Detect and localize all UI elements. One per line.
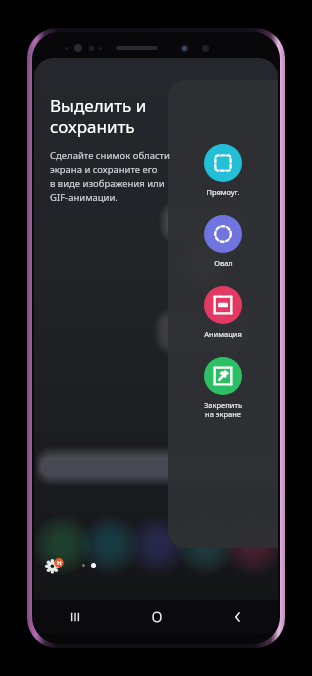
button[interactable]: Home [116, 600, 197, 634]
staticText: Овал [214, 258, 233, 268]
button[interactable]: Recents [34, 600, 116, 634]
button[interactable]: Закрепить на экране [200, 355, 246, 422]
staticText: Прямоуг. [206, 187, 240, 197]
other: Анимация [204, 286, 242, 324]
other: Закрепить на экране [204, 357, 242, 395]
staticText: Сделайте снимок области экрана и сохрани… [50, 149, 170, 204]
staticText: Анимация [204, 329, 242, 339]
staticText: Выделить и сохранить [50, 94, 147, 138]
button[interactable]: Прямоуг. [200, 142, 246, 199]
button[interactable]: Анимация [200, 284, 246, 341]
other: Прямоуг. [204, 144, 242, 182]
button[interactable]: Settings [44, 554, 66, 576]
staticText: H [57, 559, 62, 567]
button[interactable]: Back [197, 600, 278, 634]
staticText: Закрепить на экране [204, 400, 242, 420]
button[interactable]: Овал [200, 213, 246, 270]
other: Овал [204, 215, 242, 253]
